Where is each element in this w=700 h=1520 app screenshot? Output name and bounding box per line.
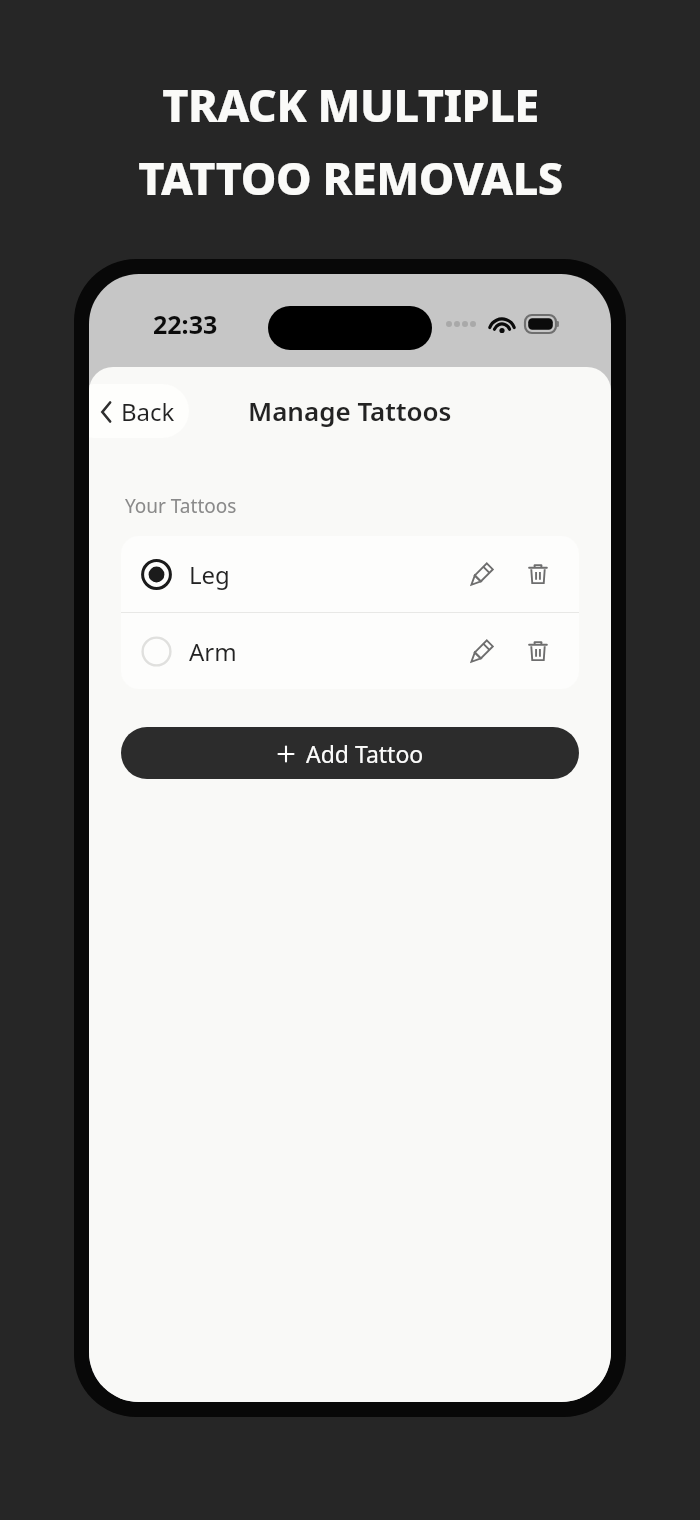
button[interactable]: Back: [89, 384, 189, 438]
button[interactable]: Add Tattoo: [121, 727, 579, 779]
staticText: TRACK MULTIPLE: [162, 74, 539, 135]
staticText: Arm: [189, 635, 237, 668]
staticText: Manage Tattoos: [248, 393, 452, 428]
button[interactable]: Delete Arm: [515, 628, 561, 674]
button[interactable]: Delete Leg: [515, 551, 561, 597]
staticText: 22:33: [153, 307, 218, 341]
button[interactable]: Arm: [121, 613, 579, 689]
staticText: Your Tattoos: [125, 493, 237, 519]
button[interactable]: Edit Arm: [459, 628, 505, 674]
staticText: Leg: [189, 558, 230, 591]
staticText: Add Tattoo: [306, 738, 424, 769]
button[interactable]: Leg: [121, 536, 579, 612]
staticText: TATTOO REMOVALS: [138, 147, 563, 208]
staticText: Back: [121, 395, 175, 428]
button[interactable]: Edit Leg: [459, 551, 505, 597]
